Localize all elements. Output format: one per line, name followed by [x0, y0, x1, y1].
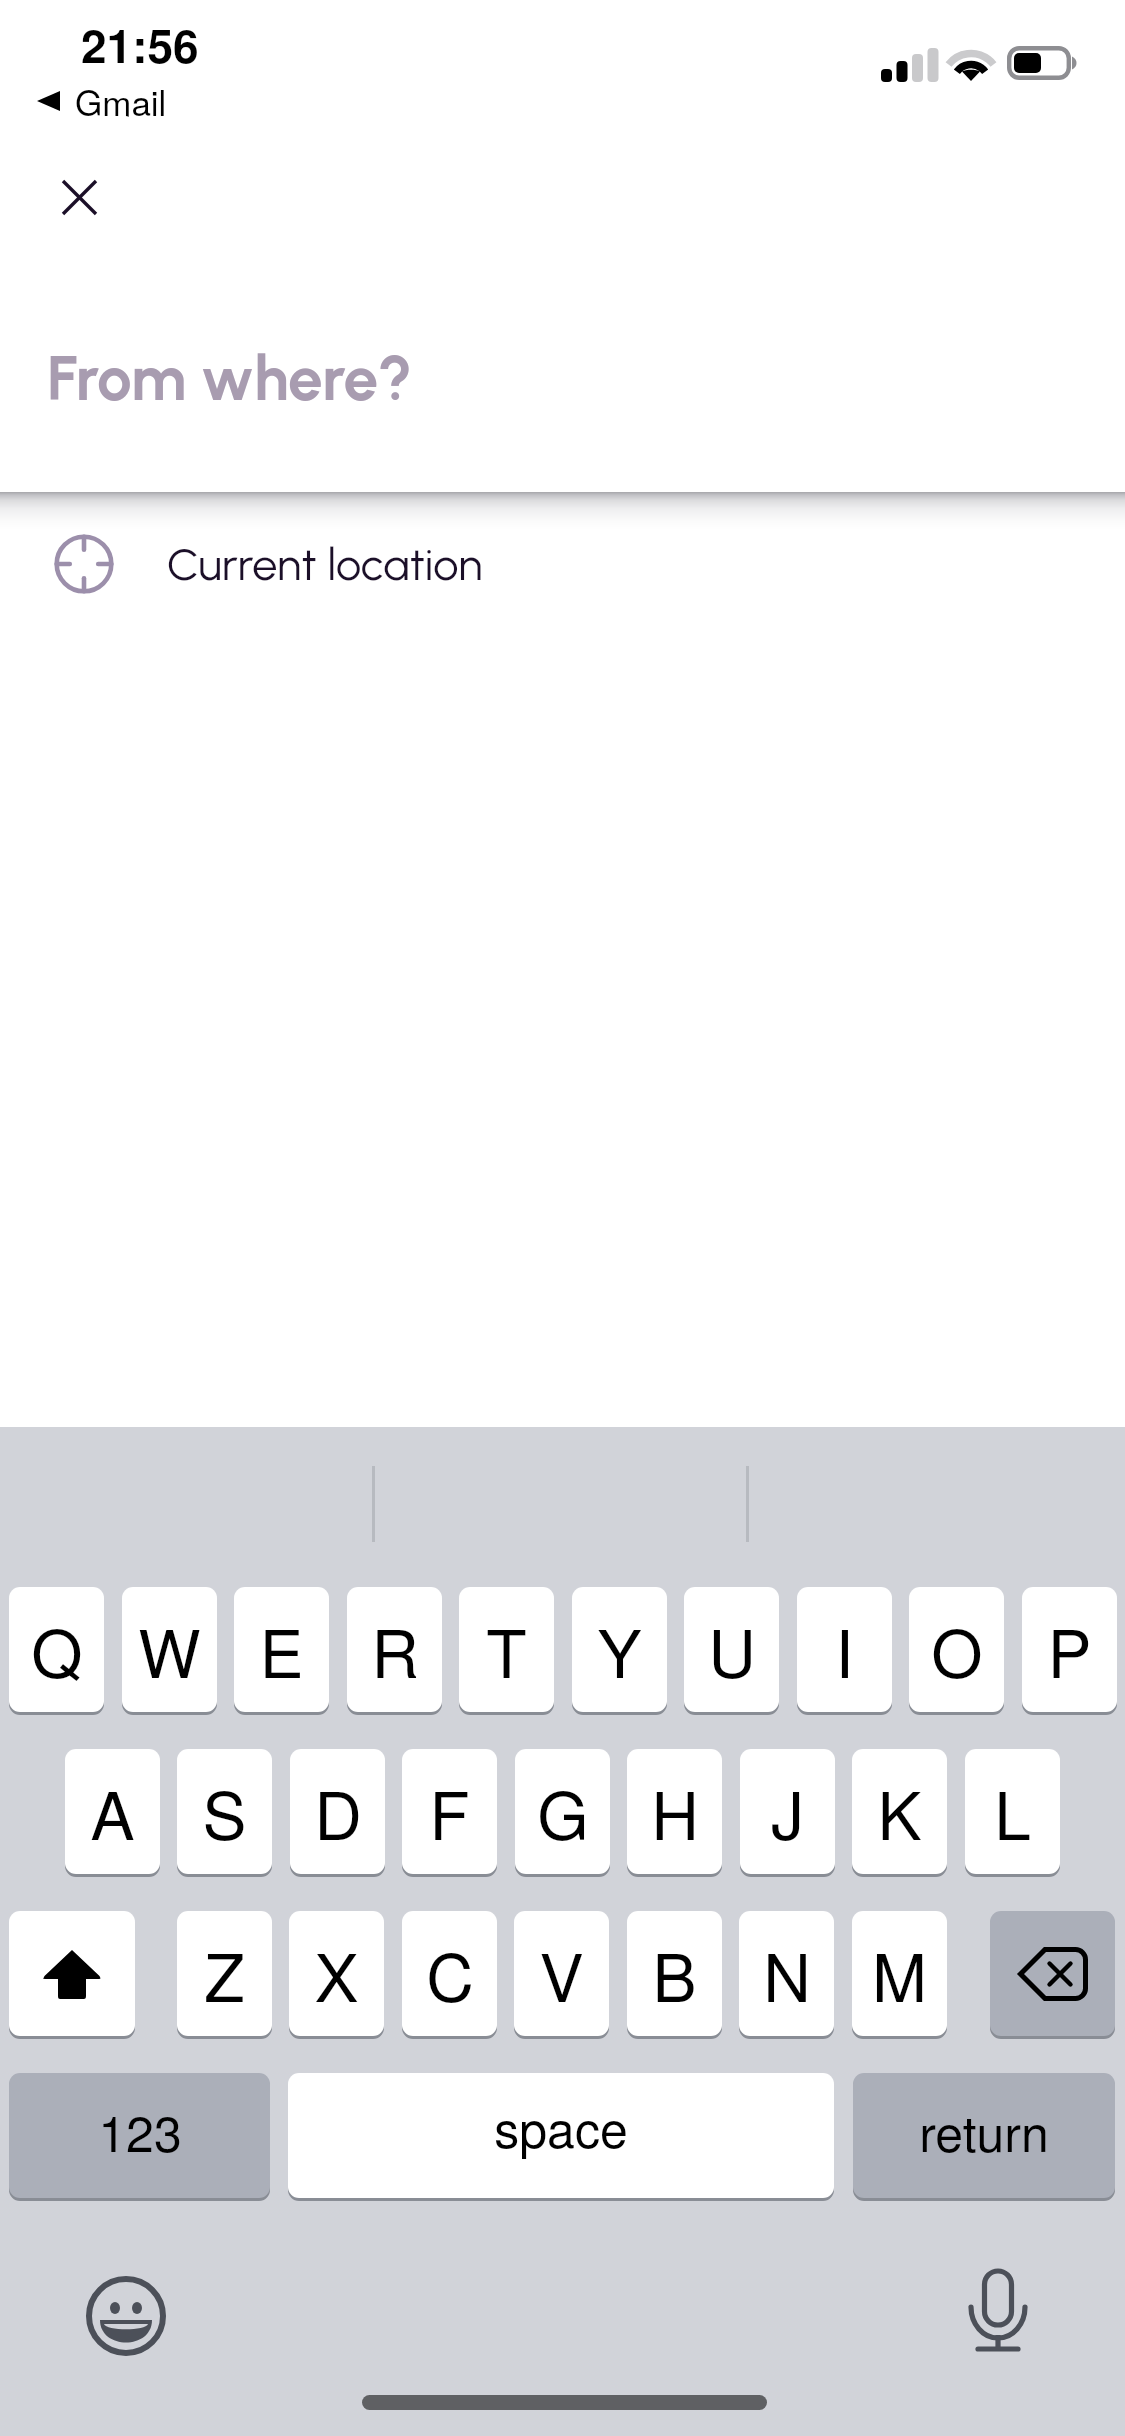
staticText: X [314, 1926, 359, 2021]
button[interactable]: B [627, 1911, 722, 2036]
button[interactable]: F [402, 1749, 497, 1874]
staticText: I [835, 1602, 854, 1697]
button[interactable]: I [797, 1587, 892, 1712]
button[interactable]: P [1022, 1587, 1117, 1712]
button[interactable]: Current location [0, 494, 1125, 634]
staticText: M [872, 1926, 927, 2021]
staticText: G [537, 1764, 589, 1859]
staticText: From where? [47, 341, 413, 415]
staticText: S [202, 1764, 247, 1859]
staticText: Q [31, 1602, 83, 1697]
button[interactable]: W [122, 1587, 217, 1712]
button[interactable]: S [177, 1749, 272, 1874]
button[interactable]: E [234, 1587, 329, 1712]
button[interactable]: R [347, 1587, 442, 1712]
button[interactable]: C [402, 1911, 497, 2036]
staticText: U [708, 1602, 756, 1697]
button[interactable]: O [909, 1587, 1004, 1712]
button[interactable]: G [515, 1749, 610, 1874]
staticText: R [371, 1602, 419, 1697]
staticText: C [426, 1926, 474, 2021]
staticText: H [651, 1764, 699, 1859]
staticText: F [429, 1764, 470, 1859]
button[interactable]: L [965, 1749, 1060, 1874]
button[interactable]: Z [177, 1911, 272, 2036]
staticText: L [994, 1764, 1031, 1859]
button[interactable]: Shift [9, 1911, 135, 2036]
staticText: Gmail [75, 76, 167, 126]
staticText: W [138, 1602, 201, 1697]
button[interactable]: H [627, 1749, 722, 1874]
button[interactable]: Dictation [948, 2265, 1048, 2365]
staticText: V [539, 1926, 584, 2021]
staticText: Current location [167, 537, 483, 591]
staticText: D [314, 1764, 362, 1859]
staticText: O [931, 1602, 983, 1697]
staticText: K [877, 1764, 922, 1859]
staticText: Y [597, 1602, 642, 1697]
button[interactable]: Q [9, 1587, 104, 1712]
button[interactable]: D [290, 1749, 385, 1874]
button[interactable]: U [684, 1587, 779, 1712]
button[interactable]: 123 [9, 2073, 270, 2198]
button[interactable]: K [852, 1749, 947, 1874]
staticText: Z [204, 1926, 245, 2021]
button[interactable]: return [853, 2073, 1115, 2198]
staticText: A [90, 1764, 135, 1859]
button[interactable]: N [739, 1911, 834, 2036]
button[interactable]: Gmail [37, 76, 167, 126]
button[interactable]: V [514, 1911, 609, 2036]
button[interactable]: space [288, 2073, 834, 2198]
staticText: 123 [98, 2095, 182, 2167]
button[interactable]: Backspace [990, 1911, 1115, 2036]
button[interactable]: T [459, 1587, 554, 1712]
staticText: B [652, 1926, 697, 2021]
button[interactable]: J [740, 1749, 835, 1874]
button[interactable]: From where? [0, 270, 1125, 492]
staticText: P [1047, 1602, 1092, 1697]
staticText: return [919, 2095, 1049, 2167]
button[interactable]: Close [44, 162, 114, 232]
staticText: 21:56 [81, 11, 199, 77]
button[interactable]: X [289, 1911, 384, 2036]
button[interactable]: A [65, 1749, 160, 1874]
button[interactable]: M [852, 1911, 947, 2036]
staticText: J [771, 1764, 804, 1859]
button[interactable]: Emoji keyboard [76, 2266, 176, 2366]
staticText: space [494, 2091, 628, 2163]
button[interactable]: Y [572, 1587, 667, 1712]
staticText: T [486, 1602, 527, 1697]
staticText: E [259, 1602, 304, 1697]
staticText: N [763, 1926, 811, 2021]
